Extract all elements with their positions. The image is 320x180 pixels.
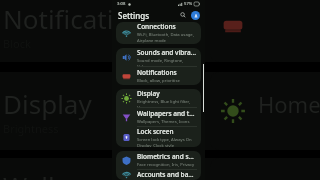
- staticText: Brightness, Blue light filter, Home scre…: [137, 99, 196, 107]
- button[interactable]: Biometrics and security: [116, 151, 201, 169]
- staticText: Display: [3, 86, 92, 121]
- button[interactable]: Lock screen: [116, 127, 201, 147]
- staticText: Wallpapers and themes: [137, 109, 196, 118]
- staticText: Lock screen: [137, 127, 174, 136]
- button[interactable]: Wallpapers and themes: [116, 108, 201, 126]
- staticText: Sound mode, Ringtone, Volume: [137, 58, 196, 66]
- staticText: 3:08: [117, 1, 126, 7]
- button[interactable]: Account: [191, 11, 200, 20]
- button[interactable]: Notifications: [116, 67, 201, 85]
- button[interactable]: Sounds and vibration: [116, 48, 201, 66]
- staticText: Wallpapers, Themes, Icons: [137, 119, 190, 125]
- button[interactable]: Connections: [116, 22, 201, 44]
- button[interactable]: Accounts and backup: [116, 170, 201, 180]
- staticText: Screen lock type, Always On Display, Clo…: [137, 137, 196, 147]
- staticText: Block, allow, prioritise: [137, 78, 180, 84]
- staticText: Biometrics and security: [137, 152, 196, 161]
- button[interactable]: Display: [116, 89, 201, 107]
- staticText: Notifications: [3, 1, 158, 36]
- staticText: Face recognition, Iris, Privacy: [137, 162, 195, 168]
- staticText: Settings: [118, 10, 150, 21]
- staticText: Wallpapers and themes: [3, 168, 245, 180]
- button[interactable]: Search: [178, 10, 188, 20]
- staticText: Notifications: [137, 68, 177, 77]
- staticText: Accounts and backup: [137, 170, 196, 179]
- staticText: Sounds and vibration: [137, 48, 196, 57]
- staticText: Connections: [137, 22, 176, 31]
- staticText: 57%: [184, 1, 193, 7]
- staticText: Wi-Fi, Bluetooth, Data usage, Airplane m…: [137, 32, 196, 44]
- staticText: Display: [137, 89, 160, 98]
- staticText: Home screen: [258, 89, 320, 119]
